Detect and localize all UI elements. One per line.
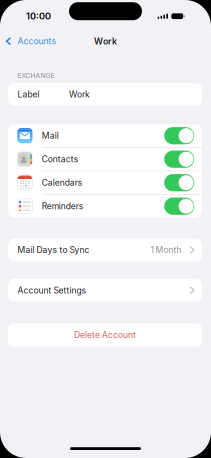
- staticText: Delete Account: [74, 330, 136, 340]
- staticText: Accounts: [17, 36, 56, 46]
- button[interactable]: Delete Account: [8, 323, 202, 347]
- staticText: Mail Days to Sync: [17, 245, 89, 255]
- staticText: Account Settings: [17, 285, 86, 295]
- staticText: Contacts: [42, 154, 79, 164]
- button[interactable]: Accounts: [0, 33, 56, 49]
- staticText: 10:00: [26, 11, 51, 22]
- button[interactable]: Calendars: [8, 171, 202, 194]
- staticText: 1 Month: [151, 245, 182, 255]
- staticText: Work: [69, 89, 90, 99]
- button[interactable]: Contacts: [8, 148, 202, 171]
- button[interactable]: Mail: [8, 124, 202, 147]
- button[interactable]: Reminders: [8, 195, 202, 218]
- staticText: Label: [17, 89, 39, 99]
- staticText: Reminders: [42, 201, 84, 211]
- staticText: Calendars: [42, 177, 83, 188]
- button[interactable]: Mail Days to Sync: [8, 239, 202, 261]
- staticText: Mail: [42, 130, 59, 141]
- staticText: EXCHANGE: [17, 71, 54, 80]
- staticText: Work: [94, 36, 117, 46]
- button[interactable]: Account Settings: [8, 279, 202, 302]
